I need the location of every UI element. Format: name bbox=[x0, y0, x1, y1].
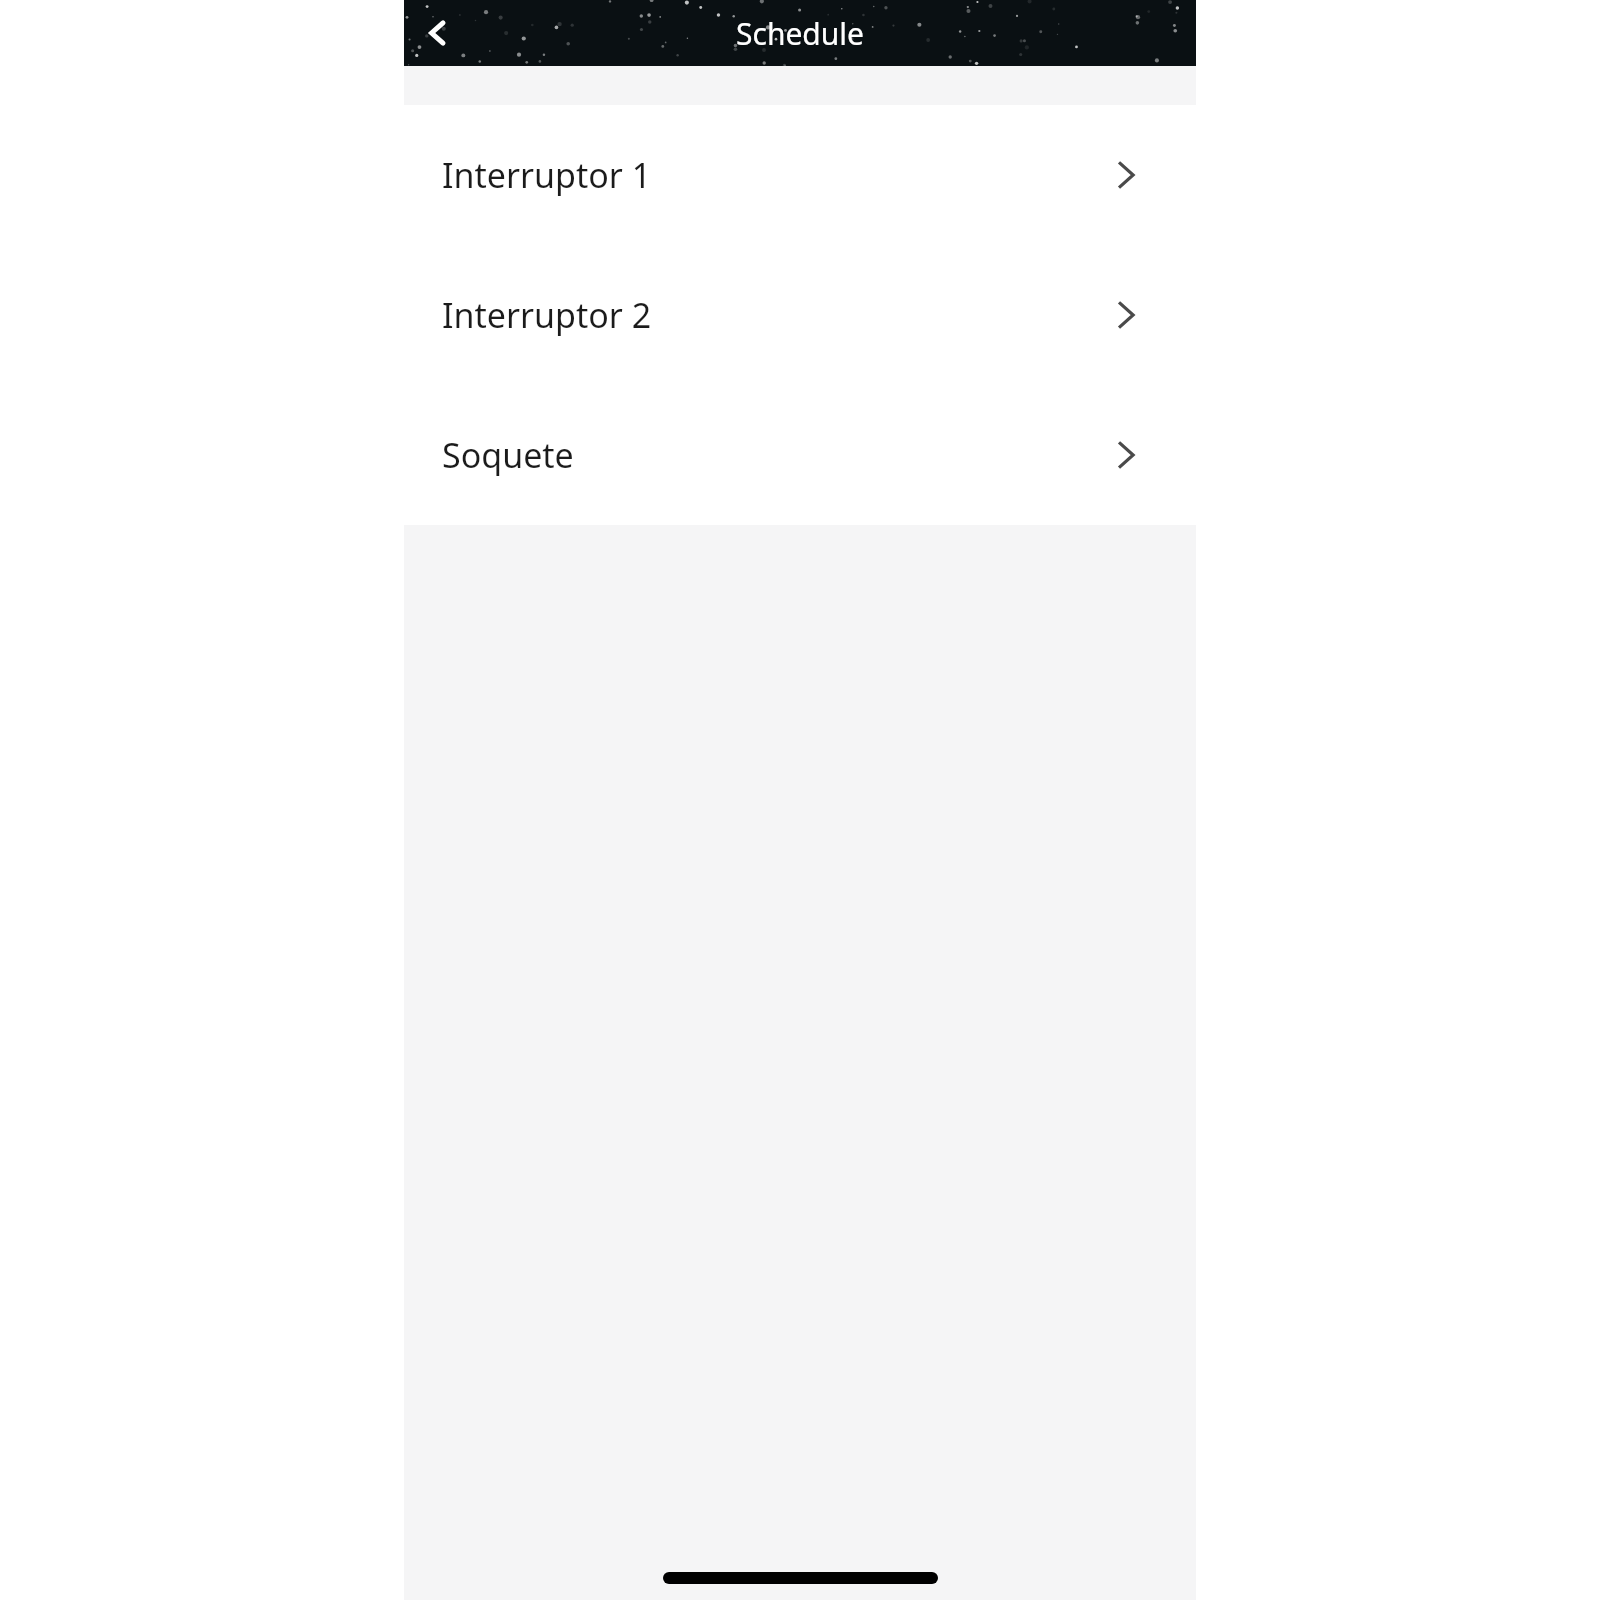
button[interactable]: Interruptor 2 bbox=[404, 245, 1196, 385]
staticText: Interruptor 2 bbox=[442, 292, 652, 338]
button[interactable]: Interruptor 1 bbox=[404, 105, 1196, 245]
staticText: Schedule bbox=[736, 13, 864, 54]
button[interactable]: Back bbox=[412, 5, 468, 61]
staticText: Soquete bbox=[442, 432, 574, 478]
button[interactable]: Soquete bbox=[404, 385, 1196, 525]
staticText: Interruptor 1 bbox=[442, 152, 652, 198]
